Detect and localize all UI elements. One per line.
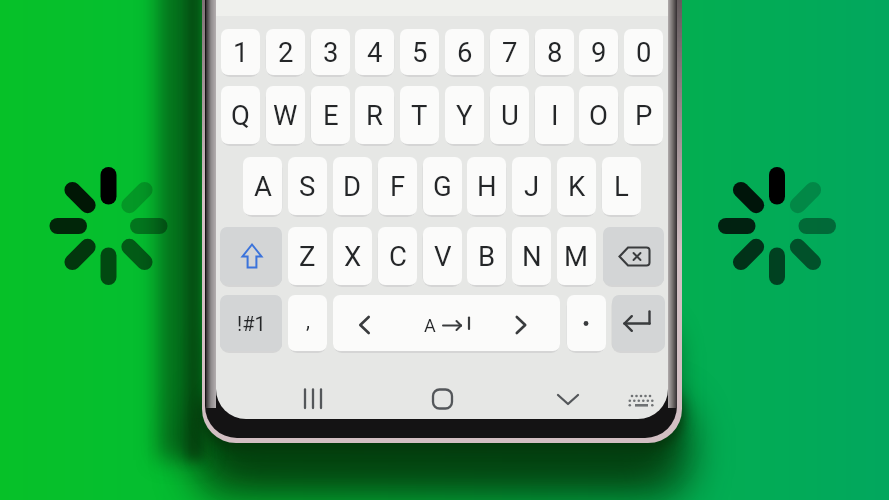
staticText: X — [344, 240, 362, 272]
staticText: O — [589, 99, 608, 131]
staticText: I — [551, 99, 559, 131]
button[interactable]: I — [535, 86, 574, 144]
staticText: 3 — [323, 36, 339, 68]
button[interactable]: B — [467, 227, 506, 285]
staticText: D — [343, 170, 362, 202]
button[interactable]: 3 — [311, 29, 350, 75]
staticText: P — [635, 99, 653, 131]
staticText: L — [614, 170, 629, 202]
staticText: 4 — [367, 36, 383, 68]
button[interactable]: T — [400, 86, 439, 144]
button[interactable]: Z — [288, 227, 327, 285]
staticText: 7 — [502, 36, 518, 68]
button[interactable] — [220, 227, 282, 285]
staticText: V — [434, 240, 452, 272]
button[interactable] — [333, 295, 560, 351]
button[interactable]: O — [579, 86, 618, 144]
button[interactable] — [567, 295, 606, 351]
button[interactable]: W — [266, 86, 305, 144]
staticText: Q — [231, 99, 250, 131]
staticText: S — [299, 170, 316, 202]
staticText: G — [433, 170, 452, 202]
staticText: , — [306, 309, 310, 332]
button[interactable] — [288, 295, 327, 351]
button[interactable] — [292, 382, 336, 416]
button[interactable]: C — [378, 227, 417, 285]
button[interactable]: 6 — [445, 29, 484, 75]
button[interactable]: !#1 — [220, 295, 282, 351]
staticText: !#1 — [237, 312, 266, 335]
button[interactable] — [546, 382, 590, 416]
staticText: C — [389, 240, 407, 272]
button[interactable]: 9 — [579, 29, 618, 75]
staticText: 5 — [412, 36, 428, 68]
button[interactable]: L — [602, 157, 641, 215]
staticText: M — [564, 240, 589, 272]
button[interactable]: M — [557, 227, 596, 285]
staticText: 8 — [547, 36, 563, 68]
button[interactable] — [603, 227, 664, 285]
button[interactable]: 7 — [490, 29, 529, 75]
staticText: 9 — [591, 36, 607, 68]
button[interactable] — [420, 382, 464, 416]
staticText: W — [273, 99, 298, 131]
button[interactable]: X — [333, 227, 372, 285]
button[interactable]: P — [624, 86, 663, 144]
staticText: 1 — [233, 36, 249, 68]
button[interactable]: 8 — [535, 29, 574, 75]
staticText: 6 — [457, 36, 473, 68]
button[interactable]: V — [423, 227, 462, 285]
button[interactable]: 2 — [266, 29, 305, 75]
button[interactable]: R — [355, 86, 394, 144]
button[interactable]: Q — [221, 86, 260, 144]
button[interactable]: 4 — [355, 29, 394, 75]
button[interactable]: S — [288, 157, 327, 215]
staticText: Z — [299, 240, 316, 272]
staticText: A — [254, 170, 272, 202]
button[interactable]: 5 — [400, 29, 439, 75]
staticText: U — [501, 99, 519, 131]
staticText: T — [411, 99, 428, 131]
button[interactable]: G — [423, 157, 462, 215]
staticText: E — [323, 99, 339, 131]
button[interactable] — [612, 295, 665, 351]
button[interactable]: D — [333, 157, 372, 215]
button[interactable]: 1 — [221, 29, 260, 75]
button[interactable]: 0 — [624, 29, 663, 75]
button[interactable] — [622, 384, 660, 414]
staticText: J — [524, 170, 540, 202]
button[interactable]: K — [557, 157, 596, 215]
staticText: F — [390, 170, 406, 202]
staticText: K — [568, 170, 586, 202]
button[interactable]: E — [311, 86, 350, 144]
staticText: Y — [456, 99, 473, 131]
button[interactable]: U — [490, 86, 529, 144]
staticText: 2 — [278, 36, 294, 68]
button[interactable]: A — [243, 157, 282, 215]
staticText: H — [477, 170, 497, 202]
staticText: B — [478, 240, 496, 272]
staticText: R — [366, 99, 383, 131]
button[interactable]: J — [512, 157, 551, 215]
button[interactable]: F — [378, 157, 417, 215]
button[interactable]: Y — [445, 86, 484, 144]
button[interactable]: N — [512, 227, 551, 285]
staticText: N — [522, 240, 542, 272]
button[interactable]: H — [467, 157, 506, 215]
staticText: 0 — [636, 36, 652, 68]
staticText: A — [424, 315, 436, 336]
